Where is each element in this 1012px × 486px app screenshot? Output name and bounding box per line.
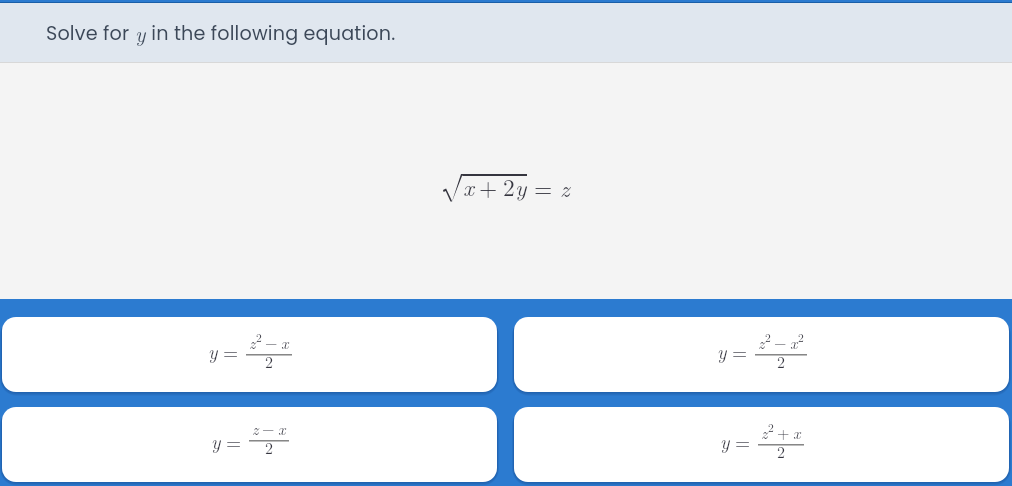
staticText: 2: [777, 350, 786, 373]
staticText: 2: [765, 329, 771, 345]
staticText: in the following equation.: [146, 20, 396, 47]
staticText: =: [223, 337, 239, 365]
staticText: y: [135, 18, 146, 48]
staticText: −: [262, 417, 275, 440]
staticText: −: [265, 331, 278, 354]
staticText: x: [281, 331, 289, 354]
staticText: =: [534, 171, 553, 204]
staticText: 2: [265, 436, 274, 459]
staticText: +: [479, 170, 498, 203]
staticText: 2: [798, 329, 804, 345]
staticText: =: [226, 427, 242, 455]
staticText: z: [758, 331, 765, 354]
button[interactable]: y: [2, 407, 497, 482]
staticText: y: [211, 427, 221, 455]
staticText: 2: [777, 440, 786, 463]
button[interactable]: y: [514, 317, 1009, 392]
staticText: y: [717, 337, 727, 365]
staticText: z: [560, 171, 570, 204]
staticText: −: [774, 331, 787, 354]
staticText: z: [249, 331, 256, 354]
staticText: 2: [265, 350, 274, 373]
staticText: y: [720, 427, 730, 455]
staticText: Solve for: [46, 20, 135, 47]
staticText: =: [732, 337, 748, 365]
staticText: x: [278, 417, 286, 440]
staticText: y: [515, 170, 527, 203]
staticText: 2: [256, 329, 262, 345]
staticText: 2: [503, 170, 515, 203]
staticText: x: [790, 331, 798, 354]
button[interactable]: y: [514, 407, 1009, 482]
staticText: =: [735, 427, 751, 455]
staticText: x: [793, 421, 801, 444]
staticText: x: [463, 170, 474, 203]
staticText: +: [777, 421, 790, 444]
staticText: y: [208, 337, 218, 365]
staticText: z: [252, 417, 259, 440]
staticText: z: [761, 421, 768, 444]
button[interactable]: y: [2, 317, 497, 392]
staticText: 2: [768, 419, 774, 435]
